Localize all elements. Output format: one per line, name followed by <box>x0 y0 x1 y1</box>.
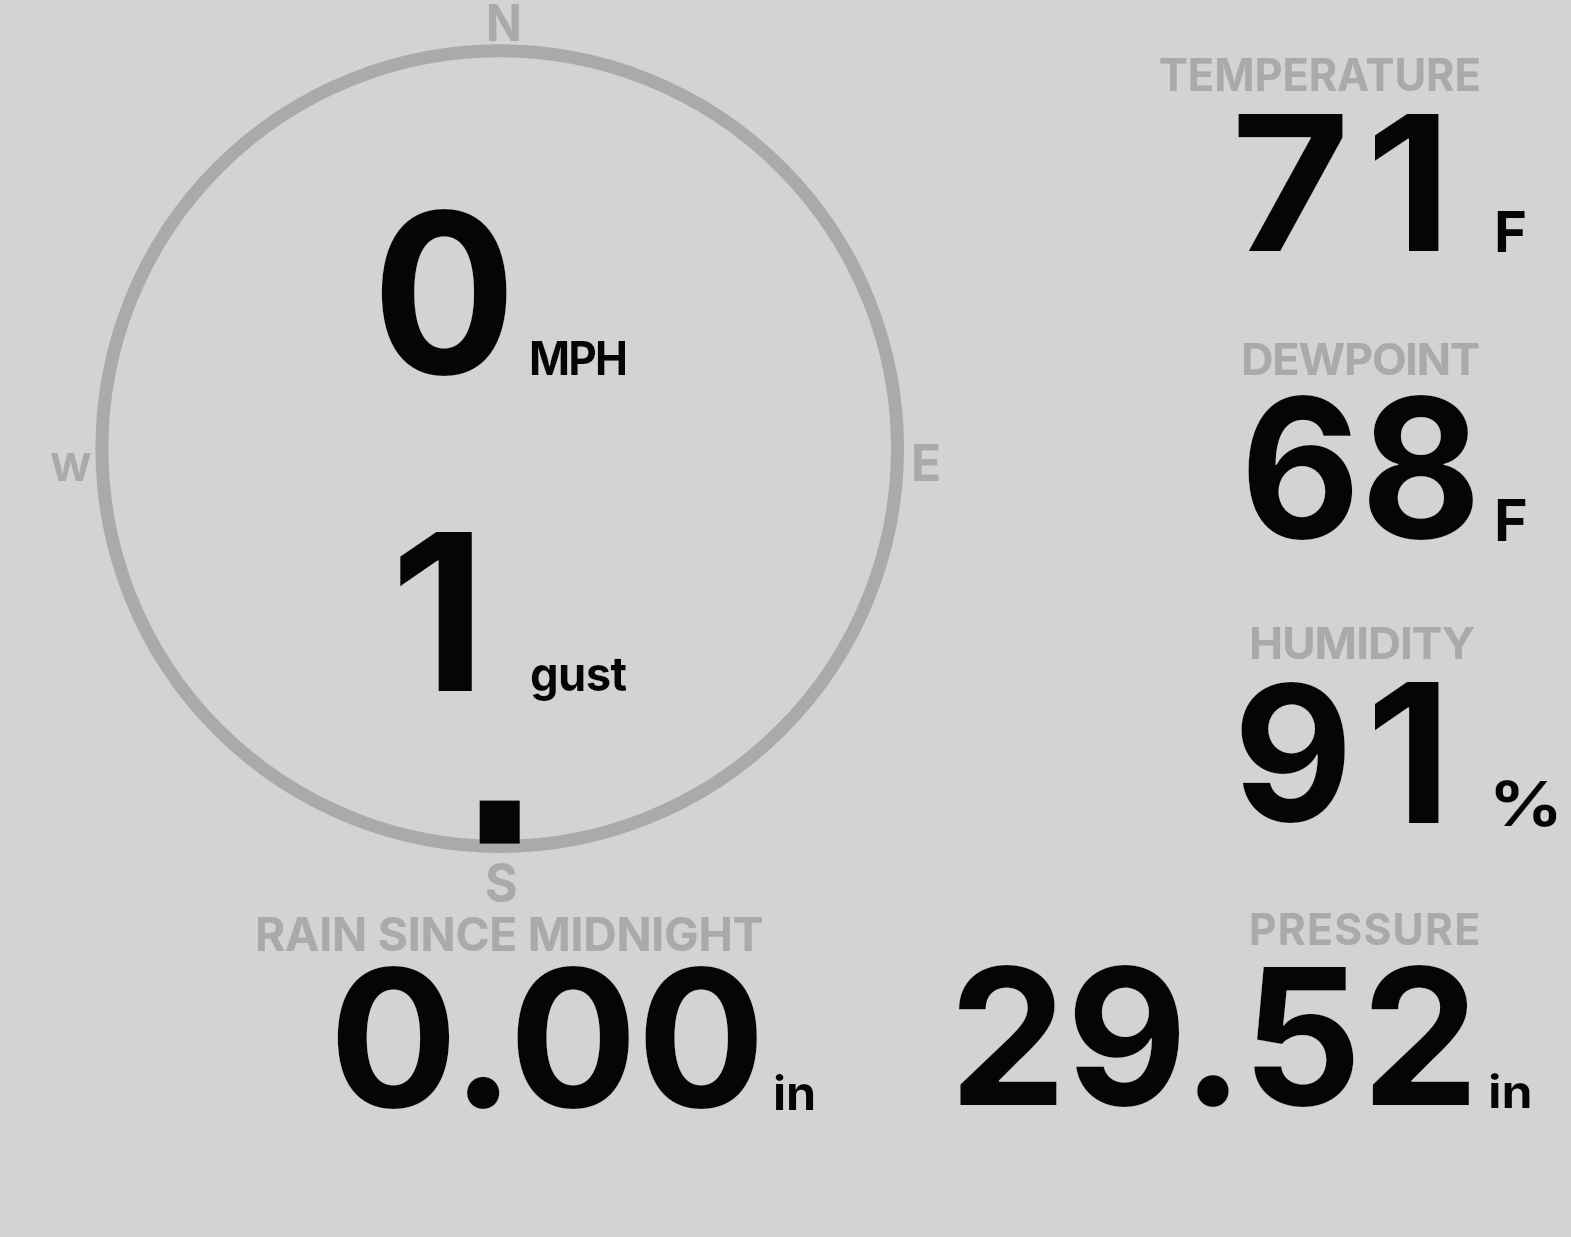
button[interactable]: Wind 0 miles per hour, gusting 1, out of… <box>88 37 912 907</box>
staticText: TEMPERATURE <box>1159 48 1481 102</box>
staticText: N <box>486 0 522 53</box>
staticText: gust <box>530 645 627 702</box>
staticText: 0 <box>372 158 517 428</box>
staticText: W <box>50 444 92 490</box>
staticText: DEWPOINT <box>1241 333 1479 386</box>
button[interactable]: Humidity 91 percent <box>1150 608 1571 833</box>
staticText: in <box>773 1064 817 1121</box>
staticText: 0.00 <box>329 921 765 1153</box>
staticText: HUMIDITY <box>1249 616 1474 669</box>
staticText: MPH <box>529 330 627 386</box>
staticText: RAIN SINCE MIDNIGHT <box>255 906 763 962</box>
staticText: % <box>1489 766 1563 842</box>
staticText: 7 <box>1231 68 1351 296</box>
staticText: E <box>911 431 942 493</box>
button[interactable]: Rain since midnight 0.00 inches <box>230 898 830 1120</box>
button[interactable]: Dewpoint 68 degrees Fahrenheit <box>1150 325 1571 550</box>
staticText: F <box>1494 485 1528 554</box>
staticText: 1 <box>1366 69 1452 297</box>
button[interactable]: Pressure 29.52 inches of mercury <box>930 895 1571 1120</box>
staticText: PRESSURE <box>1249 903 1482 956</box>
staticText: 68 <box>1240 350 1481 585</box>
staticText: 1 <box>390 480 487 743</box>
staticText: 1 <box>1366 635 1452 870</box>
button[interactable]: Temperature 71 degrees Fahrenheit <box>1150 40 1571 265</box>
staticText: F <box>1494 197 1528 266</box>
staticText: 29.52 <box>949 921 1479 1151</box>
staticText: S <box>485 851 518 915</box>
staticText: 9 <box>1233 638 1353 866</box>
staticText: in <box>1488 1063 1534 1119</box>
